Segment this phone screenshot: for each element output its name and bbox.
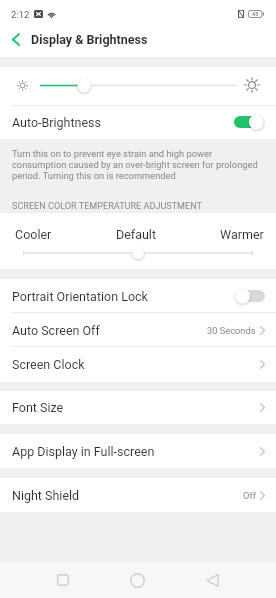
staticText: Portrait Orientation Lock: [12, 289, 148, 304]
staticText: Turn this on to prevent eye strain and h…: [12, 148, 259, 181]
staticText: Warmer: [220, 227, 264, 242]
staticText: Night Shield: [12, 488, 80, 503]
staticText: Font Size: [12, 400, 64, 415]
staticText: Display & Brightness: [31, 32, 148, 47]
staticText: App Display in Full-screen: [12, 444, 155, 459]
staticText: Screen Clock: [12, 357, 85, 372]
button[interactable]: Home: [115, 562, 160, 598]
staticText: 2:12: [11, 9, 30, 20]
button[interactable]: Back: [0, 26, 31, 53]
button[interactable]: Recent apps: [41, 562, 85, 598]
button[interactable]: Screen Clock: [0, 347, 276, 382]
staticText: Auto-Brightness: [12, 115, 102, 130]
button[interactable]: Font Size: [0, 391, 276, 424]
button[interactable]: Night Shield: [0, 478, 276, 512]
staticText: Off: [243, 490, 256, 501]
button[interactable]: Auto Screen Off: [0, 313, 276, 347]
staticText: 30 Seconds: [207, 325, 256, 336]
button[interactable]: Auto-Brightness: [0, 105, 276, 139]
staticText: Auto Screen Off: [12, 323, 100, 338]
button[interactable]: App Display in Full-screen: [0, 434, 276, 468]
button[interactable]: Back: [190, 562, 235, 598]
button[interactable]: Portrait Orientation Lock: [0, 279, 276, 313]
staticText: 43: [252, 11, 259, 17]
staticText: Cooler: [15, 227, 52, 242]
staticText: SCREEN COLOR TEMPERATURE ADJUSTMENT: [12, 201, 203, 212]
staticText: Default: [116, 227, 156, 242]
